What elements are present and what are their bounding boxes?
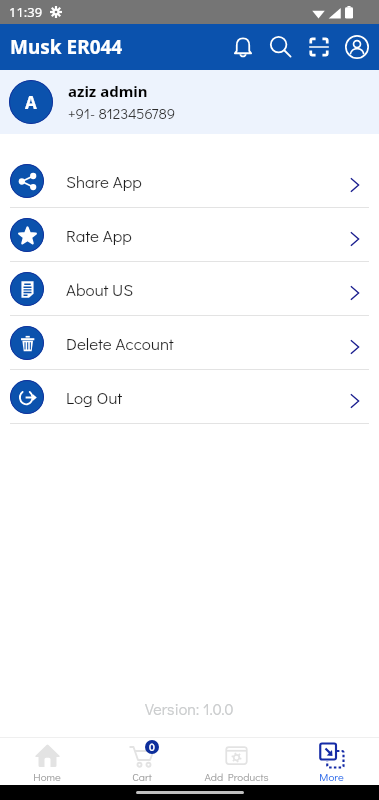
- staticText: Log Out: [66, 386, 123, 408]
- staticText: aziz admin: [68, 81, 148, 101]
- staticText: A: [25, 91, 37, 114]
- button[interactable]: 0: [94, 738, 189, 785]
- button[interactable]: Add Products: [189, 738, 284, 785]
- staticText: +91- 8123456789: [68, 103, 176, 123]
- button[interactable]: Home: [0, 738, 94, 785]
- staticText: Add Products: [204, 769, 269, 783]
- button[interactable]: Notifications: [224, 25, 262, 69]
- button[interactable]: Search: [262, 25, 300, 69]
- button[interactable]: Share App: [0, 154, 379, 208]
- button[interactable]: Delete Account: [0, 316, 379, 370]
- staticText: 11:39: [9, 3, 43, 21]
- button[interactable]: Account: [338, 25, 376, 69]
- staticText: Musk ER044: [10, 34, 123, 60]
- staticText: Version: 1.0.0: [145, 698, 234, 719]
- staticText: About US: [66, 278, 134, 300]
- staticText: Rate App: [66, 224, 132, 246]
- staticText: Home: [33, 769, 61, 783]
- staticText: 0: [149, 741, 155, 754]
- button[interactable]: More: [284, 738, 379, 785]
- button[interactable]: About US: [0, 262, 379, 316]
- button[interactable]: Log Out: [0, 370, 379, 424]
- staticText: More: [319, 769, 344, 783]
- staticText: Delete Account: [66, 332, 174, 354]
- button[interactable]: Rate App: [0, 208, 379, 262]
- staticText: Share App: [66, 170, 142, 192]
- button[interactable]: Scan document: [300, 25, 338, 69]
- staticText: Cart: [132, 769, 152, 783]
